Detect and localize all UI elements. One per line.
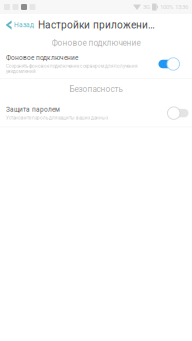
staticText: Установите пароль для защиты ваших данны… [6, 115, 108, 121]
staticText: Безопасность [69, 84, 122, 94]
staticText: Сохранять фоновое подключение с сервером… [6, 63, 137, 74]
staticText: 13:36 [175, 3, 188, 11]
staticText: 100% [160, 3, 173, 11]
button[interactable]: Назад [0, 14, 38, 36]
staticText: Фоновое подключение [6, 54, 78, 62]
button[interactable]: Фоновое подключение [0, 50, 192, 78]
button[interactable]: Защита паролем [0, 100, 192, 127]
staticText: 3G [143, 3, 150, 11]
staticText: Настройки приложени… [38, 19, 155, 31]
staticText: Назад [14, 21, 34, 29]
staticText: Фоновое подключение [51, 38, 140, 48]
staticText: Защита паролем [6, 106, 60, 113]
